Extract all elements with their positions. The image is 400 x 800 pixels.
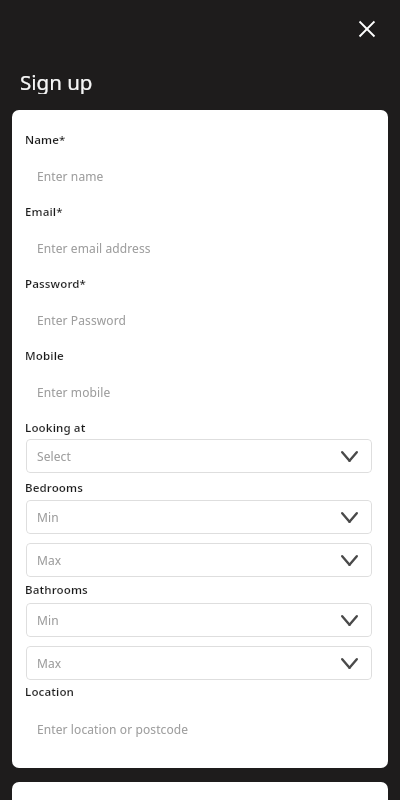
staticText: Enter mobile bbox=[37, 384, 111, 400]
button[interactable]: Min bbox=[26, 603, 372, 637]
button[interactable] bbox=[12, 782, 388, 800]
button[interactable]: Enter location or postcode bbox=[26, 718, 374, 740]
button[interactable]: Max bbox=[26, 543, 372, 577]
button[interactable]: Max bbox=[26, 646, 372, 680]
button[interactable]: Select bbox=[26, 439, 372, 473]
staticText: Mobile bbox=[25, 348, 64, 364]
staticText: Bathrooms bbox=[25, 582, 88, 598]
staticText: Max bbox=[37, 552, 62, 568]
staticText: Password* bbox=[25, 276, 86, 292]
staticText: Max bbox=[37, 655, 62, 671]
staticText: Enter email address bbox=[37, 240, 151, 256]
button[interactable]: Enter email address bbox=[26, 237, 374, 259]
button[interactable]: Enter Password bbox=[26, 309, 374, 331]
staticText: Email* bbox=[25, 204, 63, 220]
staticText: Name* bbox=[25, 132, 66, 148]
staticText: Bedrooms bbox=[25, 480, 83, 496]
staticText: Enter location or postcode bbox=[37, 721, 189, 737]
staticText: Looking at bbox=[25, 420, 86, 436]
staticText: Sign up bbox=[20, 68, 93, 94]
staticText: Enter Password bbox=[37, 312, 126, 328]
button[interactable]: Enter mobile bbox=[26, 381, 374, 403]
button[interactable]: Close bbox=[349, 11, 385, 47]
staticText: Min bbox=[37, 612, 59, 628]
button[interactable]: Min bbox=[26, 500, 372, 534]
staticText: Select bbox=[37, 448, 71, 464]
staticText: Min bbox=[37, 509, 59, 525]
staticText: Enter name bbox=[37, 168, 104, 184]
staticText: Location bbox=[25, 684, 75, 700]
button[interactable]: Enter name bbox=[26, 165, 374, 187]
